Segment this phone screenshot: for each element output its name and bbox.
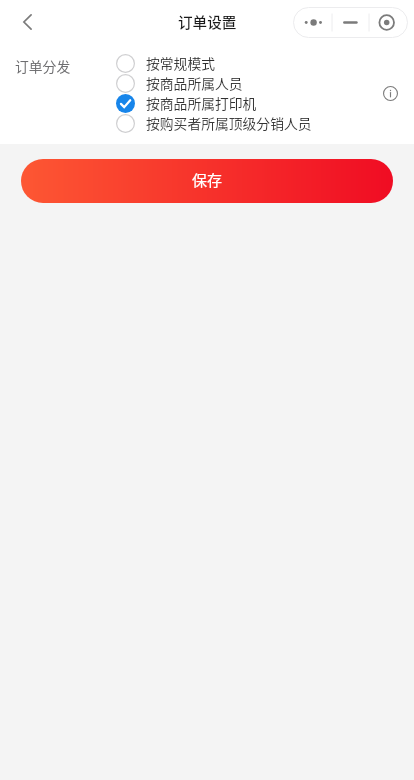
staticText: 按常规模式	[146, 53, 215, 73]
staticText: 按购买者所属顶级分销人员	[146, 113, 312, 133]
button[interactable]: Close	[369, 7, 408, 38]
staticText: 按商品所属打印机	[146, 93, 257, 113]
staticText: 订单设置	[178, 11, 237, 32]
button[interactable]: 按常规模式	[116, 53, 215, 73]
button[interactable]: Back	[9, 4, 46, 41]
staticText: 按商品所属人员	[146, 73, 243, 93]
button[interactable]: 按商品所属打印机	[116, 93, 257, 113]
staticText: 保存	[192, 169, 223, 191]
button[interactable]: 保存	[21, 159, 393, 203]
button[interactable]: 按购买者所属顶级分销人员	[116, 113, 312, 133]
button[interactable]: Info	[379, 82, 401, 104]
button[interactable]: Minimize	[332, 7, 369, 38]
staticText: 订单分发	[15, 56, 71, 76]
button[interactable]: More	[293, 7, 332, 38]
button[interactable]: 按商品所属人员	[116, 73, 243, 93]
